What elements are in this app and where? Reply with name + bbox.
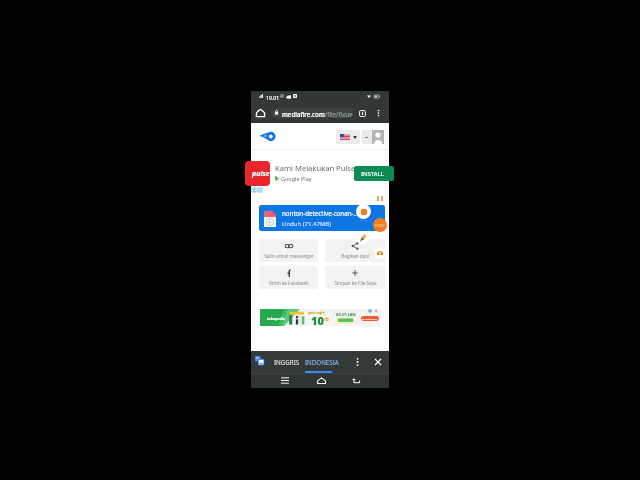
staticText: Salin untuk messenger xyxy=(264,253,314,259)
button[interactable]: Ke Tokopedia xyxy=(361,316,379,321)
button[interactable]: Bagikan opsi xyxy=(325,239,385,262)
staticText: 19.01 xyxy=(266,94,280,101)
staticText: Unduh (71.47MB) xyxy=(282,220,332,228)
staticText: /file/6xuw xyxy=(325,110,353,118)
staticText: Kami Melakukan Pulse xyxy=(275,163,356,173)
staticText: Kirim ke Facebook xyxy=(269,280,309,286)
button[interactable]: INGGRIS xyxy=(270,351,304,373)
button[interactable]: STOP xyxy=(373,218,387,232)
button[interactable]: Salin untuk messenger xyxy=(259,239,318,262)
button[interactable]: Screenshot xyxy=(374,247,386,259)
staticText: INDONESIA xyxy=(305,358,339,366)
button[interactable]: Language xyxy=(336,130,360,144)
staticText: Google Play xyxy=(281,175,312,182)
staticText: Ke Tokopedia xyxy=(362,317,378,320)
button[interactable]: More options xyxy=(350,351,364,373)
button[interactable]: Draw xyxy=(356,231,369,244)
staticText: INGGRIS xyxy=(274,358,300,366)
button[interactable]: Downloads xyxy=(356,105,369,121)
button[interactable]: INDONESIA xyxy=(301,351,343,373)
button[interactable]: mediafire.com xyxy=(271,108,353,118)
staticText: STOP xyxy=(375,223,386,228)
staticText: 06-01 JAN xyxy=(336,312,356,318)
button[interactable]: Stop recording xyxy=(356,204,371,219)
staticText: gratis ongkir xyxy=(308,311,325,315)
button[interactable]: Close xyxy=(370,351,385,373)
button[interactable]: Home xyxy=(253,105,268,121)
button[interactable]: Pause recording xyxy=(373,192,386,204)
button[interactable]: More options xyxy=(372,105,384,121)
staticText: pulse xyxy=(252,169,270,179)
staticText: tokopedia xyxy=(267,316,286,321)
staticText: Bagikan opsi xyxy=(341,253,369,259)
staticText: Simpan ke File Saya xyxy=(334,280,377,286)
staticText: 10 xyxy=(311,313,324,328)
button[interactable]: Kirim ke Facebook xyxy=(259,266,318,289)
button[interactable]: Home xyxy=(312,373,330,388)
button[interactable]: Recents xyxy=(276,373,294,388)
button[interactable]: INSTALL xyxy=(354,166,394,181)
button[interactable]: Account xyxy=(362,130,384,144)
button[interactable]: Back xyxy=(347,373,365,388)
staticText: INSTALL xyxy=(361,170,384,178)
staticText: rb xyxy=(324,316,329,322)
staticText: nonton-detective-conan-… xyxy=(282,209,359,217)
staticText: mediafire.com xyxy=(282,110,325,118)
button[interactable]: nonton-detective-conan-… xyxy=(259,205,385,231)
button[interactable]: Simpan ke File Saya xyxy=(325,266,385,289)
